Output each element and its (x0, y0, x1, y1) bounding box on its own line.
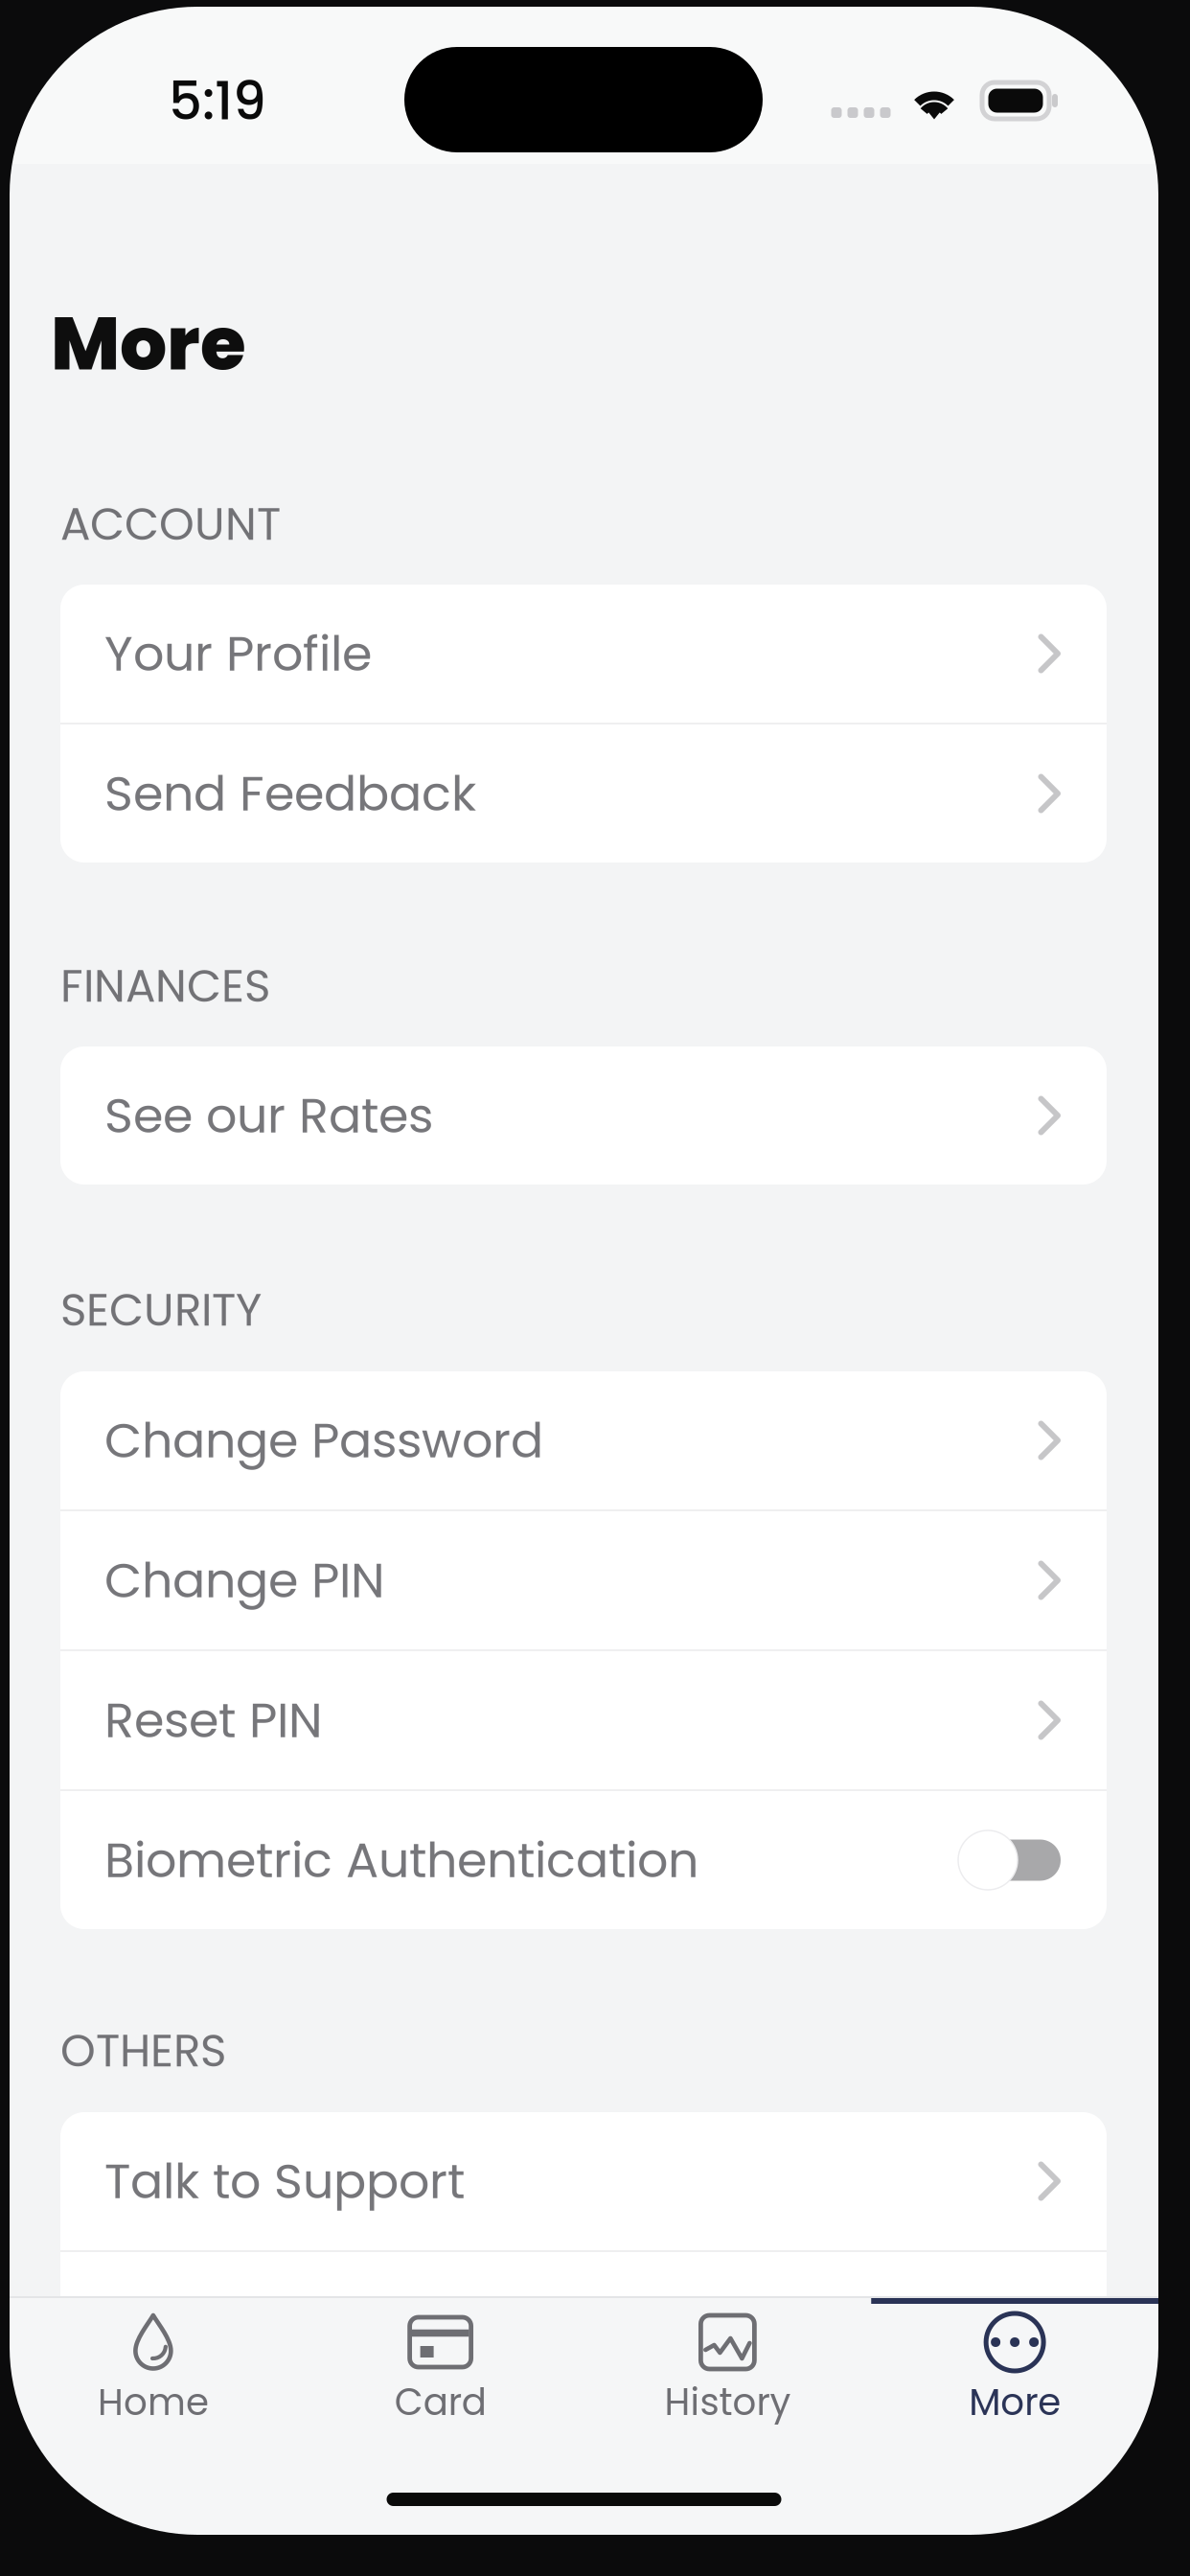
button[interactable]: About Us (60, 2252, 1107, 2390)
button[interactable]: Change Password (60, 1371, 1107, 1509)
button[interactable]: Your Profile (60, 585, 1107, 723)
staticText: SECURITY (60, 1279, 262, 1341)
button[interactable]: Talk to Support (60, 2112, 1107, 2250)
button[interactable]: Biometric Authentication (60, 1791, 1107, 1929)
staticText: Reset PIN (104, 1686, 323, 1754)
staticText: Send Feedback (104, 759, 476, 827)
staticText: Talk to Support (104, 2147, 465, 2215)
staticText: FINANCES (60, 955, 270, 1017)
staticText: OTHERS (60, 2019, 226, 2082)
button[interactable]: Send Feedback (60, 724, 1107, 862)
staticText: More (969, 2376, 1061, 2428)
staticText: Your Profile (104, 620, 372, 688)
button[interactable]: Reset PIN (60, 1651, 1107, 1789)
staticText: Card (394, 2376, 486, 2428)
button[interactable]: History (584, 2298, 871, 2455)
staticText: Change PIN (104, 1546, 385, 1614)
staticText: Change Password (104, 1406, 543, 1474)
staticText: 5:19 (169, 64, 266, 138)
button[interactable]: More (871, 2298, 1158, 2455)
button[interactable]: Home (10, 2298, 297, 2455)
staticText: ACCOUNT (60, 493, 281, 555)
button[interactable]: Change PIN (60, 1511, 1107, 1649)
button[interactable]: See our Rates (60, 1046, 1107, 1184)
staticText: See our Rates (104, 1081, 433, 1149)
staticText: More (51, 292, 246, 396)
staticText: History (664, 2376, 791, 2428)
staticText: Biometric Authentication (104, 1826, 698, 1894)
staticText: Home (98, 2376, 209, 2428)
staticText: About Us (104, 2287, 319, 2355)
button[interactable]: Card (297, 2298, 584, 2455)
